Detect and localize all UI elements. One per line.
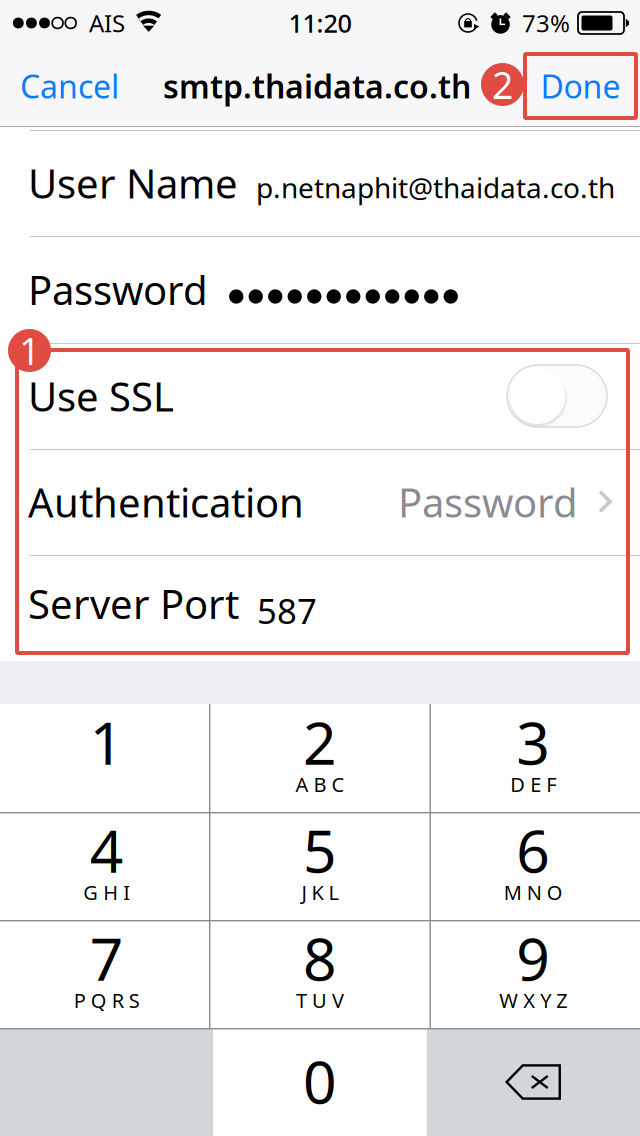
staticText: 73% [522,7,570,39]
button[interactable]: 8 [213,920,427,1028]
staticText: 2 [303,703,337,781]
staticText: 6 [516,811,550,889]
staticText: Password [398,475,578,528]
staticText: Server Port [28,577,239,630]
staticText: J K L [301,879,338,906]
staticText: 2 [492,60,513,109]
staticText: 8 [303,919,337,997]
staticText: smtp.thaidata.co.th [163,65,471,107]
staticText: Authentication [28,475,304,528]
button[interactable]: 4 [0,812,213,920]
staticText: p.netnaphit@thaidata.co.th [256,169,615,206]
staticText: 11:20 [288,6,351,40]
staticText: G H I [83,879,130,906]
button[interactable]: 3 [427,704,640,812]
button[interactable]: 1 [0,704,213,812]
staticText: W X Y Z [499,987,567,1014]
staticText: A B C [295,771,344,798]
staticText: 0 [303,1042,337,1120]
staticText: 5 [303,811,337,889]
staticText: 587 [257,587,317,633]
button[interactable]: 9 [427,920,640,1028]
staticText: AIS [89,7,125,39]
staticText: T U V [296,987,344,1014]
button[interactable]: 0 [213,1028,427,1136]
staticText: Use SSL [28,369,174,422]
staticText: Done [540,65,620,107]
button[interactable]: 6 [427,812,640,920]
button[interactable]: 5 [213,812,427,920]
staticText: 1 [90,703,124,781]
button[interactable]: 2 [213,704,427,812]
staticText: User Name [28,156,238,209]
staticText: 7 [90,919,124,997]
staticText: 9 [516,919,550,997]
staticText: 3 [516,703,550,781]
staticText: D E F [510,771,556,798]
button[interactable]: Blank [0,1028,213,1136]
button[interactable]: Authentication [28,449,613,555]
staticText: M N O [504,879,563,906]
staticText: Cancel [20,65,119,107]
staticText: 1 [19,326,40,375]
button[interactable]: Cancel [0,46,159,126]
staticText: P Q R S [74,987,140,1014]
staticText: Password [28,263,208,316]
button[interactable]: 7 [0,920,213,1028]
button[interactable]: Done [525,54,636,118]
button[interactable]: Delete [427,1028,640,1136]
staticText: 4 [90,811,124,889]
